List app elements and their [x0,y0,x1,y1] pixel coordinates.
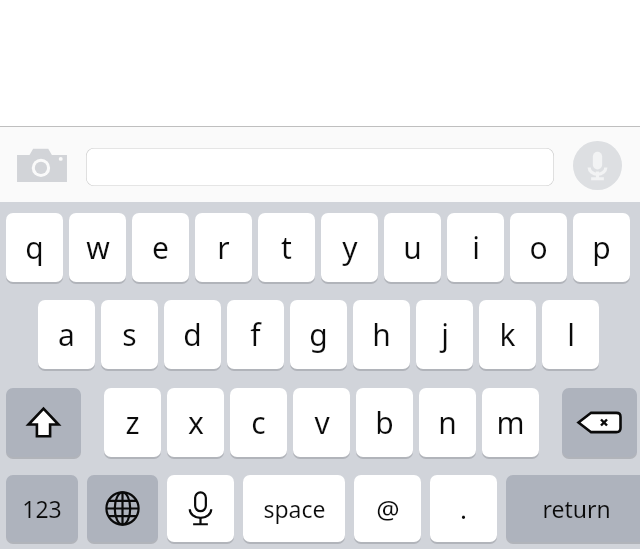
staticText: d [183,314,202,355]
button[interactable]: l [542,300,599,369]
staticText: w [86,227,110,268]
button[interactable]: Shift [6,388,81,457]
staticText: n [438,402,457,443]
staticText: a [58,314,75,355]
staticText: s [122,314,137,355]
button[interactable]: s [101,300,158,369]
button[interactable]: a [38,300,95,369]
button[interactable]: Dictation [167,475,234,542]
button[interactable]: n [419,388,476,457]
staticText: b [375,402,394,443]
button[interactable]: g [290,300,347,369]
button[interactable]: q [6,213,63,282]
button[interactable] [86,148,554,186]
staticText: m [496,402,525,443]
button[interactable]: y [321,213,378,282]
button[interactable]: @ [354,475,421,542]
button[interactable]: space [243,475,345,542]
button[interactable]: u [384,213,441,282]
staticText: o [529,227,548,268]
button[interactable]: . [430,475,497,542]
staticText: t [281,227,292,268]
button[interactable]: d [164,300,221,369]
button[interactable]: b [356,388,413,457]
staticText: i [472,227,480,268]
button[interactable]: f [227,300,284,369]
staticText: l [567,314,575,355]
staticText: return [542,493,611,524]
button[interactable]: o [510,213,567,282]
staticText: u [403,227,422,268]
button[interactable]: e [132,213,189,282]
button[interactable]: Camera [16,147,68,183]
staticText: p [592,227,611,268]
staticText: g [309,314,328,355]
button[interactable]: w [69,213,126,282]
staticText: r [217,227,230,268]
staticText: x [188,402,204,443]
staticText: y [342,227,358,268]
button[interactable]: c [230,388,287,457]
staticText: e [152,227,169,268]
button[interactable]: p [573,213,630,282]
staticText: k [499,314,516,355]
staticText: j [441,314,449,355]
button[interactable]: Backspace [562,388,637,457]
button[interactable]: 123 [6,475,78,542]
button[interactable]: t [258,213,315,282]
button[interactable]: j [416,300,473,369]
button[interactable]: r [195,213,252,282]
staticText: @ [376,491,400,526]
staticText: z [125,402,140,443]
button[interactable]: x [167,388,224,457]
button[interactable]: Voice input [573,141,622,190]
staticText: . [460,491,467,526]
button[interactable]: return [506,475,640,542]
staticText: c [251,402,266,443]
staticText: 123 [22,493,62,524]
button[interactable]: v [293,388,350,457]
button[interactable]: m [482,388,539,457]
button[interactable]: z [104,388,161,457]
staticText: f [250,314,261,355]
staticText: v [314,402,330,443]
button[interactable]: Switch keyboard [87,475,158,542]
button[interactable]: h [353,300,410,369]
staticText: q [25,227,44,268]
staticText: space [263,493,326,524]
staticText: h [372,314,391,355]
button[interactable]: k [479,300,536,369]
button[interactable]: i [447,213,504,282]
